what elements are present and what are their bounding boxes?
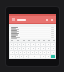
button[interactable]: Key — [14, 43, 17, 46]
button[interactable]: Key — [43, 51, 46, 54]
button[interactable] — [31, 39, 36, 42]
button[interactable]: Key — [36, 47, 40, 50]
button[interactable]: Key — [51, 47, 55, 50]
button[interactable]: Backspace — [51, 51, 55, 54]
button[interactable] — [41, 39, 46, 42]
button[interactable] — [9, 35, 56, 36]
button[interactable]: Key — [29, 55, 40, 58]
button[interactable]: Key — [14, 47, 17, 50]
button[interactable] — [9, 38, 56, 39]
button[interactable]: Key — [22, 43, 25, 46]
button[interactable]: Shift — [10, 51, 14, 54]
button[interactable]: Key — [26, 47, 30, 50]
button[interactable]: Key — [31, 47, 35, 50]
button[interactable]: Key — [20, 55, 23, 58]
button[interactable]: Key — [18, 43, 21, 46]
button[interactable] — [9, 33, 56, 34]
button[interactable]: Key — [22, 47, 25, 50]
button[interactable] — [9, 28, 56, 29]
button[interactable]: Key — [23, 51, 26, 54]
button[interactable]: Key — [46, 47, 50, 50]
button[interactable]: Key — [35, 51, 38, 54]
button[interactable]: Symbols — [10, 55, 15, 58]
button[interactable] — [9, 36, 56, 37]
button[interactable]: Key — [10, 43, 13, 46]
button[interactable] — [9, 29, 56, 30]
button[interactable] — [51, 39, 56, 42]
button[interactable]: Key — [31, 51, 34, 54]
button[interactable]: Key — [15, 51, 18, 54]
button[interactable]: Key — [18, 47, 21, 50]
button[interactable] — [9, 34, 56, 35]
button[interactable] — [26, 39, 31, 42]
button[interactable]: Key — [47, 51, 50, 54]
button[interactable] — [21, 39, 26, 42]
button[interactable] — [9, 31, 56, 32]
button[interactable]: Key — [19, 51, 22, 54]
button[interactable] — [9, 30, 56, 31]
button[interactable]: Key — [26, 43, 30, 46]
button[interactable] — [46, 39, 51, 42]
button[interactable]: Key — [16, 55, 19, 58]
button[interactable]: Key — [46, 55, 50, 58]
button[interactable]: Menu — [11, 17, 16, 22]
button[interactable]: Key — [41, 47, 45, 50]
button[interactable]: Key — [41, 55, 45, 58]
button[interactable] — [9, 27, 56, 28]
button[interactable]: Action — [50, 18, 54, 22]
button[interactable]: Key — [51, 43, 55, 46]
button[interactable] — [9, 39, 15, 42]
button[interactable]: Action — [45, 18, 49, 22]
button[interactable] — [36, 39, 41, 42]
button[interactable] — [9, 32, 56, 33]
button[interactable] — [9, 37, 56, 38]
button[interactable]: Key — [46, 43, 50, 46]
button[interactable]: Key — [39, 51, 42, 54]
button[interactable]: Key — [31, 43, 35, 46]
button[interactable]: Key — [41, 43, 45, 46]
button[interactable]: Key — [27, 51, 30, 54]
button[interactable]: Key — [36, 43, 40, 46]
button[interactable]: Key — [51, 55, 55, 58]
button[interactable] — [15, 39, 21, 42]
button[interactable]: Key — [10, 47, 13, 50]
button[interactable]: Key — [24, 55, 28, 58]
